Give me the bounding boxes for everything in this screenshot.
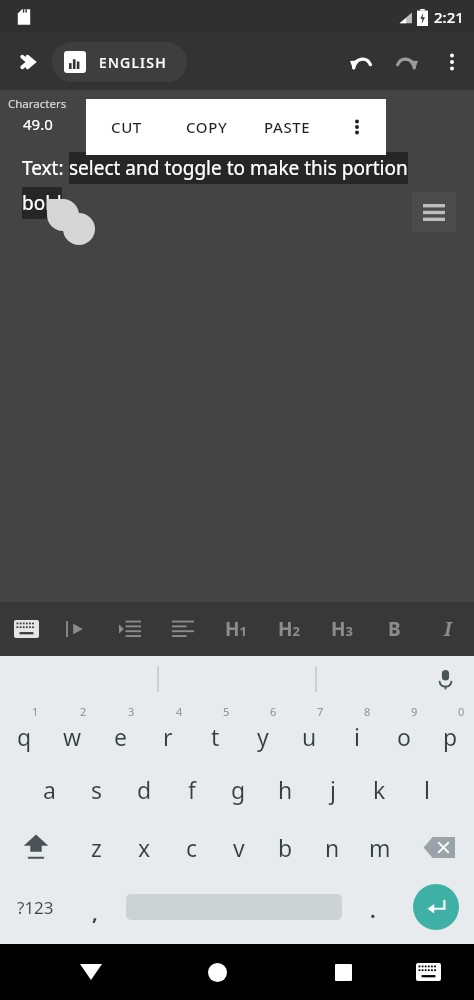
button[interactable]: l: [403, 760, 450, 818]
button[interactable]: d: [121, 760, 168, 818]
button[interactable]: s: [73, 760, 121, 818]
staticText: H3: [331, 616, 353, 642]
staticText: 0: [458, 704, 465, 719]
staticText: 7: [317, 704, 324, 719]
staticText: Text:: [22, 155, 69, 181]
staticText: 9.0: [96, 114, 118, 134]
staticText: o: [397, 721, 411, 752]
staticText: 4: [176, 704, 183, 719]
button[interactable]: v: [215, 818, 262, 876]
button[interactable]: a: [25, 760, 73, 818]
button[interactable]: CUT: [86, 99, 166, 155]
button[interactable]: Shift: [0, 818, 72, 876]
button[interactable]: w: [48, 702, 96, 760]
button[interactable]: j: [309, 760, 356, 818]
button[interactable]: Back: [64, 945, 118, 999]
staticText: g: [231, 774, 246, 805]
button[interactable]: e: [96, 702, 144, 760]
button[interactable]: o: [380, 702, 427, 760]
staticText: c: [186, 832, 198, 863]
staticText: m: [369, 832, 391, 863]
button[interactable]: Italic: [421, 602, 474, 656]
button[interactable]: More options: [430, 40, 474, 84]
button[interactable]: PASTE: [247, 99, 328, 155]
staticText: x: [138, 832, 151, 863]
button[interactable]: k: [356, 760, 403, 818]
staticText: PASTE: [264, 117, 311, 137]
staticText: 6: [270, 704, 277, 719]
staticText: j: [330, 774, 336, 805]
staticText: 9: [411, 704, 418, 719]
staticText: a: [43, 774, 56, 805]
staticText: d: [137, 774, 152, 805]
button[interactable]: ?123: [0, 876, 71, 938]
staticText: r: [163, 721, 173, 752]
button[interactable]: Voice input: [428, 662, 462, 696]
staticText: ENGLISH: [99, 53, 167, 72]
button[interactable]: H3: [315, 602, 368, 656]
button[interactable]: p: [427, 702, 474, 760]
button[interactable]: g: [215, 760, 262, 818]
button[interactable]: i: [333, 702, 380, 760]
button[interactable]: .: [349, 876, 397, 938]
staticText: Words: [89, 96, 124, 112]
button[interactable]: Redo: [384, 39, 430, 85]
button[interactable]: m: [356, 818, 403, 876]
button[interactable]: Backspace: [403, 818, 474, 876]
button[interactable]: Switch keyboard: [401, 945, 455, 999]
button[interactable]: Recent apps: [316, 945, 370, 999]
button[interactable]: u: [286, 702, 333, 760]
staticText: COPY: [186, 117, 228, 137]
button[interactable]: Indent right: [52, 602, 104, 656]
staticText: n: [325, 832, 340, 863]
button[interactable]: z: [72, 818, 120, 876]
staticText: w: [63, 721, 82, 752]
staticText: 2: [80, 704, 87, 719]
staticText: v: [233, 832, 245, 863]
staticText: select and toggle to make this portion: [69, 155, 408, 181]
staticText: 8: [364, 704, 371, 719]
staticText: f: [188, 774, 196, 805]
staticText: B: [388, 616, 401, 642]
button[interactable]: h: [262, 760, 309, 818]
button[interactable]: Keyboard: [0, 602, 52, 656]
staticText: ,: [92, 899, 98, 926]
staticText: .: [370, 897, 376, 924]
button[interactable]: Undo: [338, 39, 384, 85]
button[interactable]: ENGLISH: [52, 42, 187, 82]
staticText: h: [278, 774, 293, 805]
staticText: u: [302, 721, 317, 752]
button[interactable]: Enter: [397, 876, 474, 938]
button[interactable]: More text options: [328, 99, 386, 155]
button[interactable]: t: [192, 702, 239, 760]
button[interactable]: Align left: [156, 602, 209, 656]
button[interactable]: COPY: [166, 99, 247, 155]
button[interactable]: ,: [71, 876, 119, 938]
button[interactable]: Expand toolbar: [6, 40, 50, 84]
button[interactable]: Home: [190, 945, 244, 999]
staticText: l: [424, 774, 430, 805]
button[interactable]: Space: [119, 876, 349, 938]
staticText: t: [211, 721, 220, 752]
button[interactable]: f: [168, 760, 215, 818]
button[interactable]: H1: [209, 602, 262, 656]
button[interactable]: Resize handle: [412, 192, 456, 232]
button[interactable]: n: [309, 818, 356, 876]
button[interactable]: Bold: [368, 602, 421, 656]
button[interactable]: r: [144, 702, 192, 760]
button[interactable]: c: [168, 818, 215, 876]
staticText: z: [91, 832, 102, 863]
staticText: 1: [32, 704, 39, 719]
button[interactable]: q: [0, 702, 48, 760]
staticText: i: [354, 721, 360, 752]
staticText: p: [443, 721, 458, 752]
staticText: Characters: [8, 96, 67, 112]
button[interactable]: x: [120, 818, 168, 876]
staticText: CUT: [111, 117, 142, 137]
button[interactable]: y: [239, 702, 286, 760]
button[interactable]: H2: [262, 602, 315, 656]
staticText: s: [91, 774, 103, 805]
button[interactable]: Increase indent: [104, 602, 156, 656]
staticText: q: [17, 721, 32, 752]
button[interactable]: b: [262, 818, 309, 876]
